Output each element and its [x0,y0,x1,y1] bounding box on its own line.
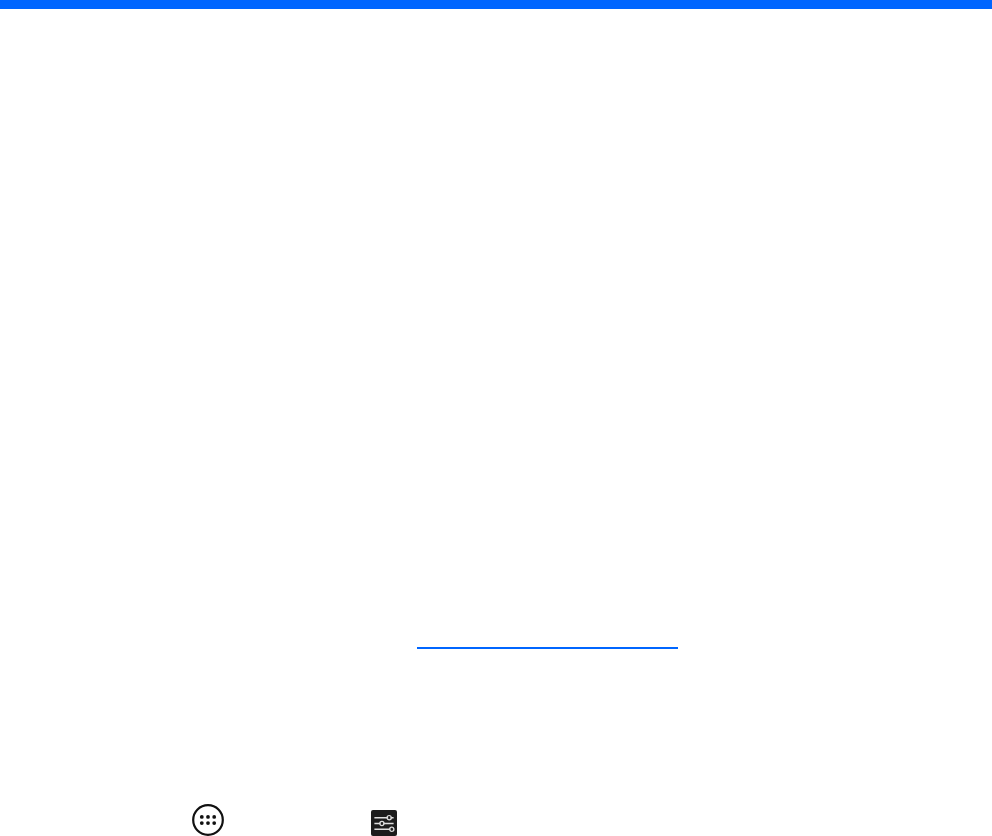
button[interactable]: Settings [371,810,397,836]
button[interactable]: Apps [192,804,224,836]
